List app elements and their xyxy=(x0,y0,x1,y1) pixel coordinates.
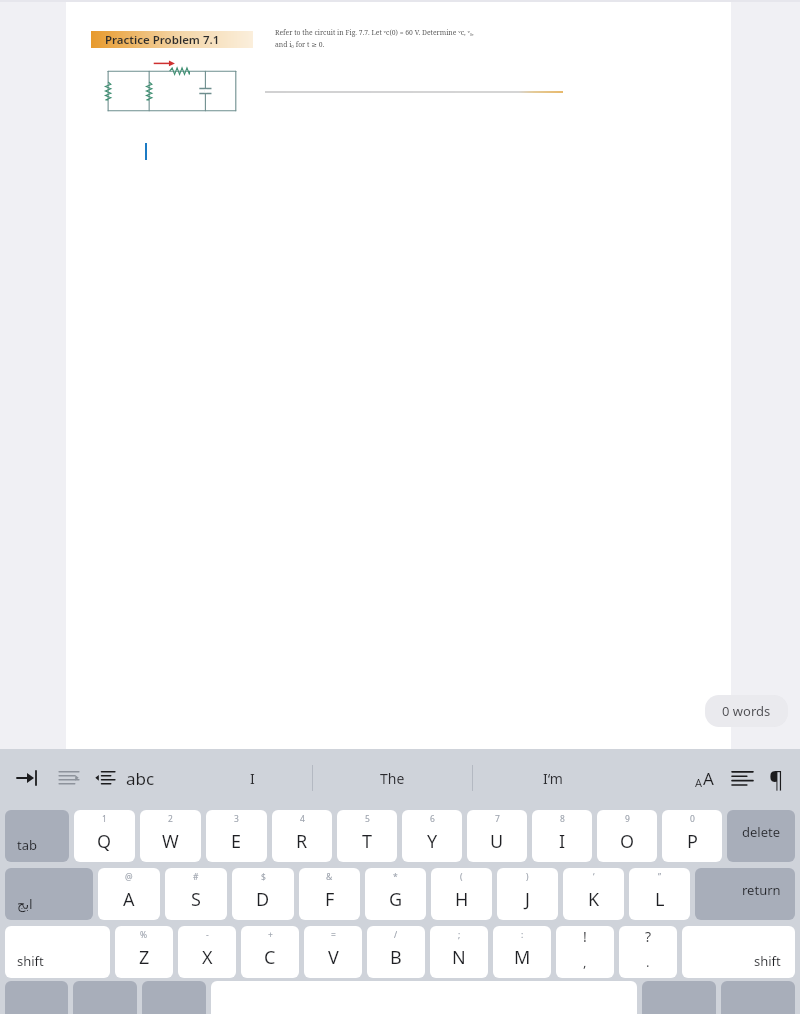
button[interactable]: shift xyxy=(682,926,795,978)
staticText: ? xyxy=(645,927,652,946)
staticText: ) xyxy=(526,871,529,883)
button[interactable]: ! xyxy=(556,926,614,978)
button[interactable]: Dictation xyxy=(142,981,206,1014)
staticText: Q xyxy=(97,829,112,854)
staticText: 7 xyxy=(495,813,500,825)
staticText: H xyxy=(455,887,469,912)
staticText: 1 xyxy=(102,813,107,825)
staticText: P xyxy=(687,829,698,854)
button[interactable]: abc xyxy=(122,763,159,794)
staticText: 0 words xyxy=(722,702,771,720)
staticText: F xyxy=(325,887,335,912)
staticText: delete xyxy=(742,823,781,841)
button[interactable]: ? xyxy=(619,926,677,978)
staticText: return xyxy=(742,881,781,899)
button[interactable]: 7 xyxy=(467,810,527,862)
button[interactable]: ” xyxy=(629,868,690,920)
staticText: V xyxy=(328,945,339,970)
staticText: ¶ xyxy=(769,763,784,793)
button[interactable]: / xyxy=(367,926,425,978)
staticText: A xyxy=(123,887,135,912)
staticText: : xyxy=(521,929,524,941)
staticText: A xyxy=(703,767,714,790)
button[interactable]: * xyxy=(365,868,426,920)
button[interactable]: delete xyxy=(727,810,795,862)
button[interactable]: Text size xyxy=(691,765,717,791)
staticText: 9 xyxy=(625,813,630,825)
button[interactable]: 5 xyxy=(337,810,397,862)
button[interactable]: The xyxy=(313,749,472,807)
staticText: The xyxy=(380,769,405,788)
staticText: I‘m xyxy=(543,769,563,788)
button[interactable]: : xyxy=(493,926,551,978)
staticText: / xyxy=(394,929,398,941)
button[interactable]: I xyxy=(193,749,312,807)
staticText: W xyxy=(162,829,179,854)
staticText: 8 xyxy=(560,813,565,825)
staticText: D xyxy=(256,887,270,912)
staticText: + xyxy=(268,929,273,941)
button[interactable]: @ xyxy=(98,868,160,920)
button[interactable]: 9 xyxy=(597,810,657,862)
button[interactable]: 0 xyxy=(662,810,722,862)
staticText: & xyxy=(326,871,333,883)
button[interactable]: 3 xyxy=(206,810,267,862)
button[interactable]: + xyxy=(241,926,299,978)
button[interactable]: ابج xyxy=(5,868,93,920)
staticText: 5 xyxy=(365,813,370,825)
staticText: L xyxy=(655,887,665,912)
button[interactable]: Globe xyxy=(5,981,68,1014)
button[interactable]: Increase indent xyxy=(92,765,118,791)
button[interactable]: return xyxy=(695,868,795,920)
button[interactable]: ) xyxy=(497,868,558,920)
button[interactable]: = xyxy=(304,926,362,978)
button[interactable]: 4 xyxy=(272,810,332,862)
staticText: , xyxy=(583,953,587,971)
button[interactable]: tab xyxy=(5,810,69,862)
button[interactable]: 1 xyxy=(74,810,135,862)
button[interactable]: 8 xyxy=(532,810,592,862)
staticText: K xyxy=(588,887,600,912)
button[interactable]: ( xyxy=(431,868,492,920)
staticText: A xyxy=(695,775,703,790)
button[interactable]: & xyxy=(299,868,360,920)
button[interactable]: 2 xyxy=(140,810,201,862)
staticText: shift xyxy=(17,952,44,970)
staticText: T xyxy=(362,829,373,854)
button[interactable]: 6 xyxy=(402,810,462,862)
staticText: N xyxy=(452,945,466,970)
button[interactable]: shift xyxy=(5,926,110,978)
button[interactable]: ; xyxy=(430,926,488,978)
staticText: Y xyxy=(427,829,438,854)
staticText: E xyxy=(231,829,242,854)
staticText: * xyxy=(393,871,398,883)
button[interactable]: I‘m xyxy=(473,749,632,807)
staticText: 4 xyxy=(300,813,305,825)
button[interactable]: % xyxy=(115,926,173,978)
staticText: % xyxy=(140,929,148,941)
staticText: shift xyxy=(754,952,781,970)
staticText: = xyxy=(331,929,336,941)
button[interactable]: - xyxy=(178,926,236,978)
button[interactable]: 0 words xyxy=(705,695,788,727)
button[interactable]: Emoji xyxy=(73,981,137,1014)
staticText: X xyxy=(202,945,213,970)
staticText: ; xyxy=(458,929,461,941)
staticText: ابج xyxy=(17,897,33,912)
button[interactable]: Paragraph xyxy=(767,761,786,795)
button[interactable]: Tab xyxy=(14,765,40,791)
button[interactable]: # xyxy=(165,868,227,920)
staticText: # xyxy=(193,871,199,883)
staticText: ! xyxy=(583,927,587,946)
button[interactable]: Alignment xyxy=(729,765,755,791)
staticText: Z xyxy=(139,945,150,970)
button[interactable]: $ xyxy=(232,868,294,920)
staticText: C xyxy=(264,945,276,970)
button[interactable]: Decrease indent xyxy=(56,765,82,791)
button[interactable]: ‘ xyxy=(563,868,624,920)
staticText: G xyxy=(389,887,403,912)
staticText: M xyxy=(514,945,531,970)
